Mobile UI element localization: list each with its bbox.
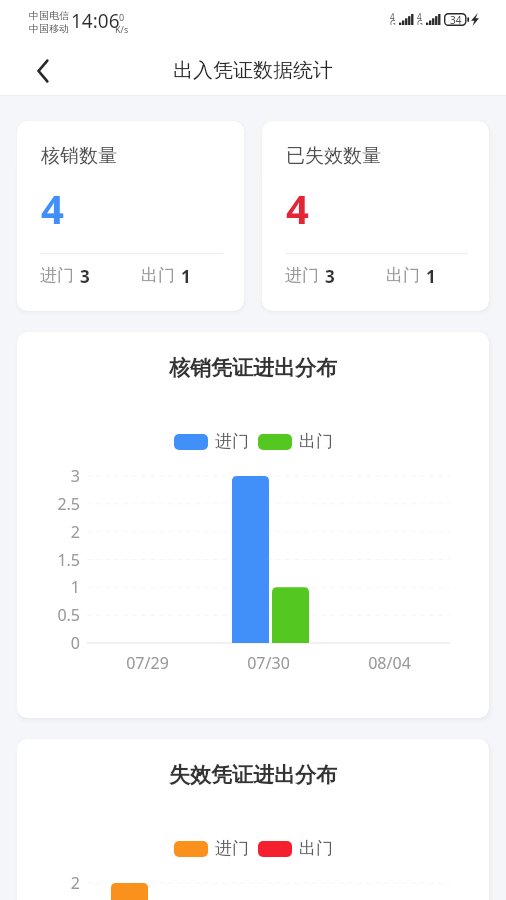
staticText: 3	[325, 265, 335, 288]
staticText: 0.5	[17, 604, 80, 626]
staticText: 07/29	[87, 652, 208, 674]
staticText: 出门	[386, 265, 420, 286]
staticText: 1.5	[17, 549, 80, 571]
staticText: 已失效数量	[286, 144, 381, 168]
staticText: 出门	[299, 838, 333, 859]
staticText: 中国电信	[29, 9, 69, 22]
staticText: 4	[41, 181, 64, 235]
staticText: 2	[17, 872, 80, 894]
staticText: 4	[286, 181, 309, 235]
button[interactable]: 进门	[174, 431, 249, 452]
staticText: 2	[17, 521, 80, 543]
button[interactable]: 失效凭证进出分布	[17, 739, 489, 900]
staticText: 核销凭证进出分布	[17, 355, 489, 381]
staticText: 0	[119, 11, 125, 23]
staticText: 进门	[285, 265, 319, 286]
staticText: 07/30	[208, 652, 329, 674]
staticText: 失效凭证进出分布	[17, 762, 489, 788]
staticText: 4G	[390, 11, 399, 25]
staticText: 中国移动	[29, 22, 69, 35]
staticText: 3	[80, 265, 90, 288]
button[interactable]: 进门	[174, 838, 249, 859]
button[interactable]: 核销数量	[17, 121, 244, 311]
staticText: 进门	[40, 265, 74, 286]
staticText: 进门	[215, 838, 249, 859]
staticText: 1	[17, 576, 80, 598]
staticText: 1	[426, 265, 436, 288]
staticText: 3	[17, 465, 80, 487]
staticText: 进门	[215, 431, 249, 452]
staticText: 08/04	[329, 652, 450, 674]
staticText: 2.5	[17, 493, 80, 515]
button[interactable]: 出门	[258, 431, 333, 452]
staticText: 34	[450, 13, 462, 26]
staticText: 出入凭证数据统计	[173, 58, 333, 83]
staticText: 核销数量	[41, 144, 117, 168]
staticText: K/s	[115, 23, 129, 35]
staticText: 14:06	[71, 8, 120, 34]
button[interactable]: Back	[20, 45, 64, 89]
staticText: 0	[17, 632, 80, 654]
button[interactable]: 已失效数量	[262, 121, 489, 311]
staticText: 4G	[417, 11, 426, 25]
button[interactable]: 出门	[258, 838, 333, 859]
button[interactable]: 核销凭证进出分布	[17, 332, 489, 718]
staticText: 出门	[141, 265, 175, 286]
staticText: 1	[181, 265, 191, 288]
staticText: 出门	[299, 431, 333, 452]
